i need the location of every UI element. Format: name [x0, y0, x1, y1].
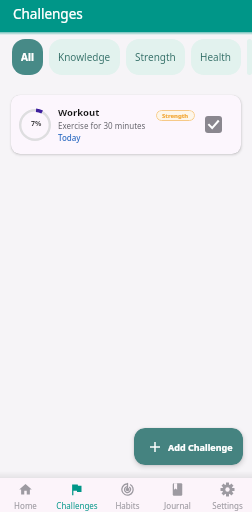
staticText: Add Challenge: [168, 441, 233, 453]
button[interactable]: Strength: [156, 110, 195, 121]
button[interactable]: Settings: [202, 478, 252, 512]
staticText: Habits: [115, 500, 140, 511]
button[interactable]: Journal: [152, 478, 202, 512]
button[interactable]: Habits: [102, 478, 152, 512]
staticText: Today: [58, 132, 81, 143]
staticText: Strength: [135, 50, 176, 64]
staticText: Exercise for 30 minutes: [58, 120, 146, 131]
staticText: Strength: [162, 112, 189, 120]
staticText: 7%: [31, 119, 42, 129]
button[interactable]: Strength: [126, 39, 185, 75]
button[interactable]: 7%: [11, 95, 241, 154]
staticText: Challenges: [13, 5, 83, 23]
staticText: Journal: [164, 500, 191, 511]
staticText: Home: [14, 500, 37, 511]
staticText: Workout: [58, 106, 100, 119]
button[interactable]: Challenges: [0, 0, 252, 32]
staticText: All: [21, 50, 34, 64]
staticText: Challenges: [56, 500, 98, 511]
staticText: Health: [200, 50, 232, 64]
button[interactable]: Challenges: [51, 478, 102, 512]
button[interactable]: Home: [0, 478, 51, 512]
staticText: Knowledge: [58, 50, 111, 64]
button[interactable]: Add Challenge: [134, 428, 243, 465]
button[interactable]: Mark complete: [205, 116, 222, 133]
button[interactable]: Health: [191, 39, 241, 75]
staticText: Settings: [212, 500, 243, 511]
button[interactable]: All: [12, 39, 43, 75]
button[interactable]: Knowledge: [49, 39, 120, 75]
